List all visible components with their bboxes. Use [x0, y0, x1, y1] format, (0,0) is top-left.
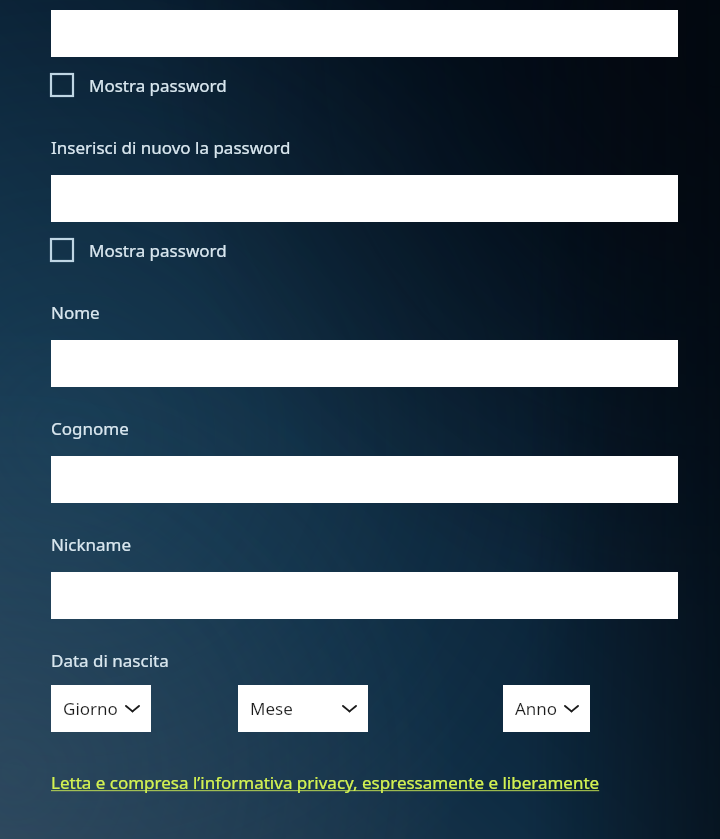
staticText: Mostra password [89, 239, 227, 262]
staticText: Cognome [51, 417, 129, 440]
button[interactable]: Mostra password 2 [51, 235, 227, 265]
other: Mostra password 1 [51, 74, 73, 96]
button[interactable]: Mese [238, 685, 368, 732]
staticText: Anno [515, 697, 558, 720]
button[interactable]: Mostra password 1 [51, 70, 227, 100]
staticText: Inserisci di nuovo la password [51, 136, 291, 159]
button[interactable]: Giorno [51, 685, 151, 732]
staticText: Mese [250, 697, 293, 720]
other: Mostra password 2 [51, 239, 73, 261]
staticText: Mostra password [89, 74, 227, 97]
staticText: Nome [51, 301, 100, 324]
staticText: Data di nascita [51, 649, 169, 672]
staticText: Nickname [51, 533, 132, 556]
button[interactable]: Anno [503, 685, 590, 732]
button[interactable]: Letta e compresa l’informativa privacy, … [51, 771, 600, 794]
staticText: Giorno [63, 697, 118, 720]
